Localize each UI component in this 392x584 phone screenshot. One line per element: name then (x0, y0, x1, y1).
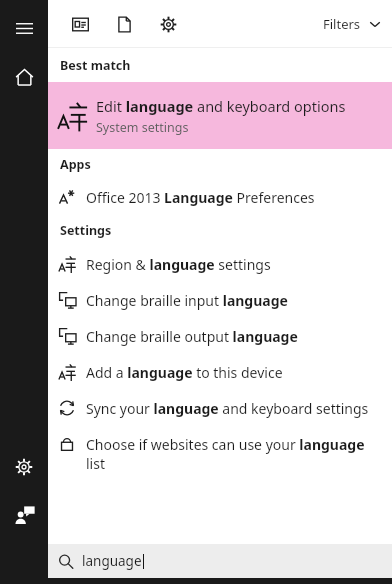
staticText: Best match (60, 57, 131, 74)
staticText: Choose if websites can use your language (86, 435, 365, 454)
button[interactable]: Menu (8, 12, 40, 44)
button[interactable]: Choose if websites can use your language (48, 426, 392, 474)
button[interactable]: Office 2013 Language Preferences (48, 180, 392, 214)
button[interactable]: Web results (64, 8, 96, 40)
staticText: Filters (323, 15, 361, 33)
staticText: Edit language and keyboard options (96, 96, 346, 116)
staticText: System settings (96, 119, 189, 136)
button[interactable]: Region & language settings (48, 246, 392, 282)
staticText: language (82, 552, 142, 570)
staticText: Sync your language and keyboard settings (86, 399, 369, 418)
staticText: list (86, 454, 105, 473)
button[interactable]: Sync your language and keyboard settings (48, 390, 392, 426)
button[interactable]: Add a language to this device (48, 354, 392, 390)
button[interactable]: Edit language and keyboard options (48, 82, 392, 149)
staticText: Settings (60, 222, 112, 239)
button[interactable]: Filters (323, 15, 382, 33)
button[interactable]: Settings results (152, 8, 184, 40)
staticText: Region & language settings (86, 255, 271, 274)
staticText: Change braille input language (86, 291, 288, 310)
staticText: Office 2013 Language Preferences (86, 188, 315, 207)
button[interactable]: Change braille output language (48, 318, 392, 354)
button[interactable]: Settings (7, 450, 41, 484)
button[interactable]: Documents (108, 8, 140, 40)
staticText: Add a language to this device (86, 363, 283, 382)
button[interactable]: Feedback (7, 498, 41, 532)
staticText: Change braille output language (86, 327, 298, 346)
button[interactable]: Change braille input language (48, 282, 392, 318)
button[interactable]: Home (7, 60, 41, 94)
button[interactable]: language (48, 544, 392, 578)
staticText: Apps (60, 156, 91, 173)
